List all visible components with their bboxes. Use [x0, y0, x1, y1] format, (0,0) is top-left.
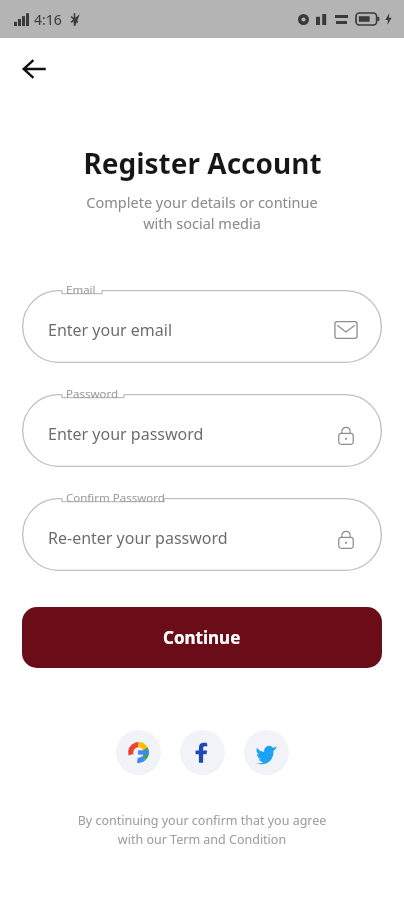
- button[interactable]: Continue: [22, 607, 382, 668]
- staticText: Enter your password: [48, 423, 204, 445]
- staticText: Email: [66, 282, 96, 298]
- staticText: Continue: [163, 626, 241, 649]
- staticText: Enter your email: [48, 319, 173, 341]
- staticText: Password: [66, 386, 119, 402]
- button[interactable]: Confirm Password: [22, 498, 382, 571]
- button[interactable]: Back: [13, 48, 55, 90]
- staticText: Register Account: [83, 144, 322, 182]
- staticText: Complete your details or continue with s…: [86, 192, 318, 234]
- button[interactable]: Sign in with Google: [116, 730, 161, 775]
- button[interactable]: Email: [22, 290, 382, 363]
- staticText: By continuing your confirm that you agre…: [40, 812, 364, 848]
- staticText: Confirm Password: [66, 490, 165, 506]
- staticText: Re-enter your password: [48, 527, 228, 549]
- button[interactable]: Sign in with Facebook: [180, 730, 225, 775]
- staticText: 4:16: [34, 10, 62, 29]
- button[interactable]: Sign in with Twitter: [244, 730, 289, 775]
- button[interactable]: Password: [22, 394, 382, 467]
